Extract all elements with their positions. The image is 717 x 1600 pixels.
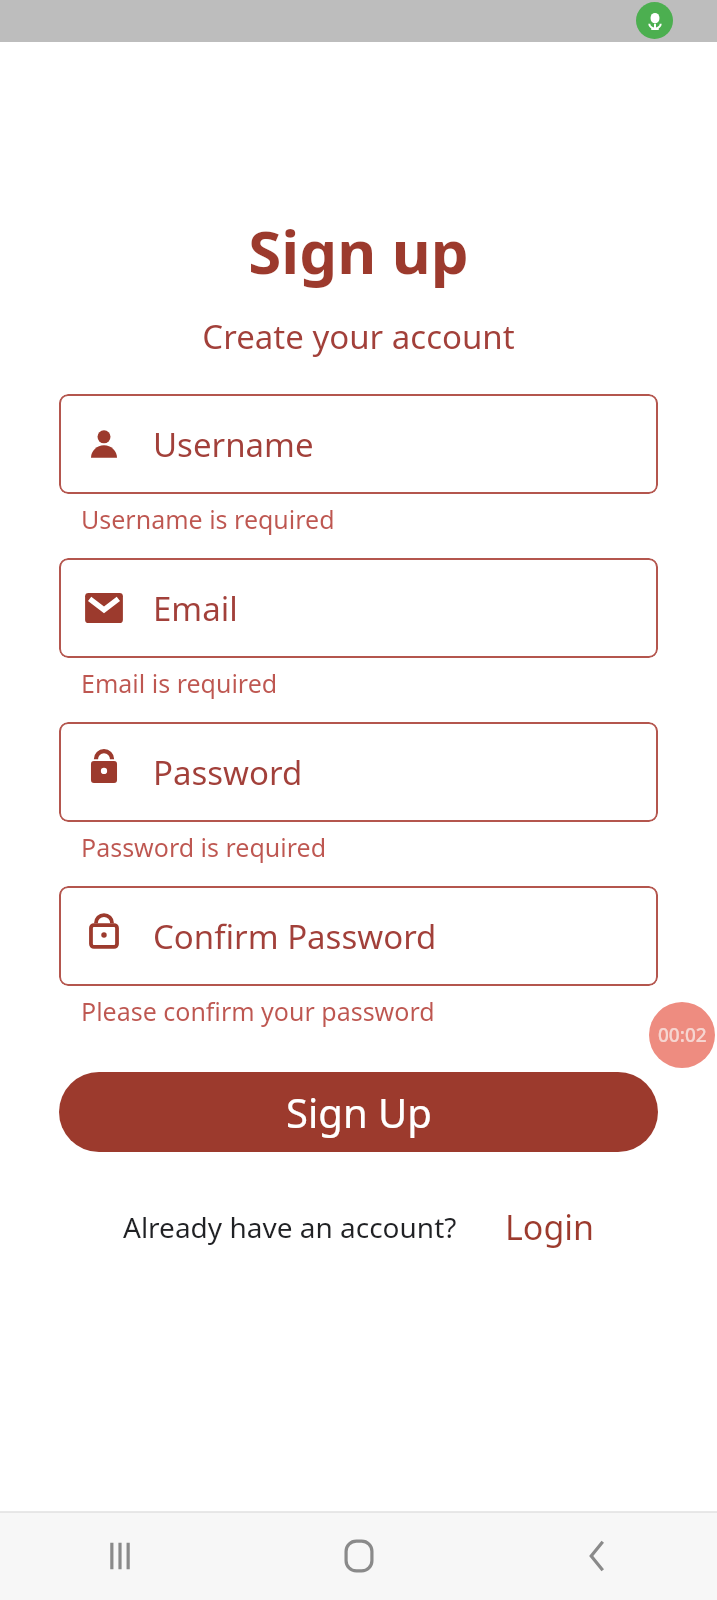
button[interactable]: Email: [59, 558, 658, 658]
button[interactable]: Recording timer: [649, 1002, 715, 1068]
button[interactable]: Sign Up: [59, 1072, 658, 1152]
staticText: Confirm Password: [153, 914, 437, 959]
staticText: Email: [153, 586, 238, 631]
staticText: Sign Up: [286, 1085, 432, 1139]
button[interactable]: Password: [59, 722, 658, 822]
staticText: Username is required: [81, 502, 335, 536]
button[interactable]: Back: [558, 1516, 638, 1596]
button[interactable]: Recent apps: [80, 1516, 160, 1596]
button[interactable]: Home: [319, 1516, 399, 1596]
staticText: Sign up: [0, 210, 717, 292]
button[interactable]: Username: [59, 394, 658, 494]
staticText: Already have an account?: [123, 1208, 457, 1246]
button[interactable]: Login: [505, 1204, 595, 1250]
staticText: Username: [153, 422, 314, 467]
staticText: Email is required: [81, 666, 278, 700]
button[interactable]: Confirm Password: [59, 886, 658, 986]
staticText: Password is required: [81, 830, 327, 864]
staticText: Login: [505, 1204, 595, 1250]
staticText: Password: [153, 750, 303, 795]
button[interactable]: Microphone recording: [636, 2, 673, 39]
staticText: Create your account: [0, 314, 717, 359]
staticText: Please confirm your password: [81, 994, 435, 1028]
staticText: 00:02: [658, 1022, 707, 1048]
